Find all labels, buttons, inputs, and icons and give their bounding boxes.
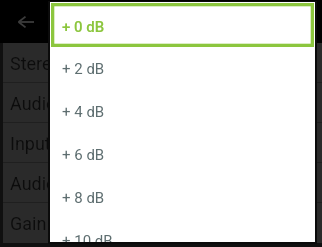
button[interactable]: Input gain [3,123,322,163]
button[interactable]: + 6 dB [51,133,314,176]
staticText: Audio format [10,173,115,194]
button[interactable]: + 0 dB [51,3,314,47]
button[interactable]: Gain control [3,203,322,243]
button[interactable]: Back [0,0,48,43]
staticText: Stereo mode [10,53,113,74]
button[interactable]: Stereo mode [3,43,322,83]
staticText: + 10 dB [62,232,113,242]
staticText: Gain control [10,213,107,234]
staticText: + 0 dB [62,18,105,36]
staticText: Input gain [10,133,90,154]
staticText: Audio source [10,93,116,114]
button[interactable]: + 10 dB [51,219,314,242]
button[interactable]: Audio format [3,163,322,203]
button[interactable]: Audio source [3,83,322,123]
staticText: + 6 dB [62,146,105,164]
staticText: + 4 dB [62,103,105,121]
button[interactable]: + 4 dB [51,90,314,133]
staticText: + 8 dB [62,189,105,207]
button[interactable]: + 2 dB [51,47,314,90]
staticText: + 2 dB [62,60,105,78]
button[interactable]: + 8 dB [51,176,314,219]
